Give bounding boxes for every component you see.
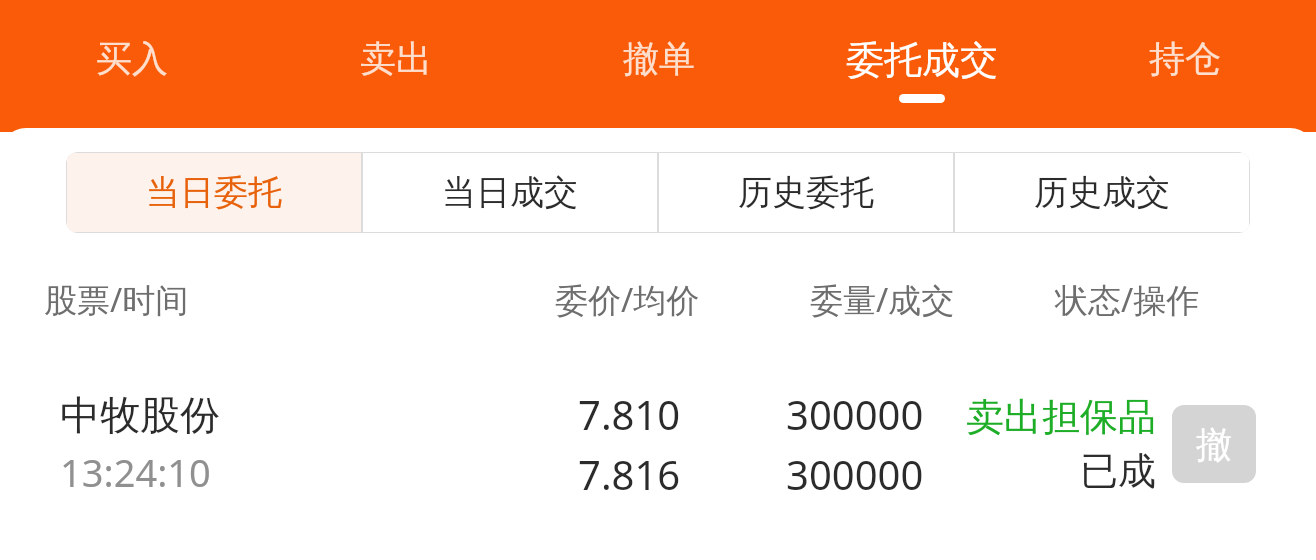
staticText: 委价/均价 [555,277,700,322]
button[interactable]: 买入 [0,0,264,132]
staticText: 已成 [1080,447,1156,495]
staticText: 当日成交 [442,171,578,214]
staticText: 委量/成交 [810,277,955,322]
staticText: 卖出担保品 [966,393,1156,441]
button[interactable]: 卖出 [264,0,527,132]
staticText: 股票/时间 [44,277,189,322]
staticText: 300000 [786,447,924,501]
button[interactable]: 历史委托 [659,153,953,232]
staticText: 7.810 [578,387,681,441]
button[interactable]: 当日成交 [363,153,657,232]
staticText: 7.816 [578,447,681,501]
button[interactable]: 持仓 [1053,0,1316,132]
button[interactable]: 历史成交 [955,153,1249,232]
staticText: 买入 [96,36,168,81]
staticText: 持仓 [1149,36,1221,81]
staticText: 状态/操作 [1055,277,1200,322]
staticText: 卖出 [360,36,432,81]
button[interactable]: 委托成交 [790,0,1053,132]
staticText: 历史委托 [738,171,874,214]
button[interactable]: 中牧股份 [0,387,1316,501]
button[interactable]: 撤单 [1172,405,1256,483]
staticText: 当日委托 [146,171,282,214]
staticText: 300000 [786,387,924,441]
staticText: 撤单 [623,36,695,81]
staticText: 13:24:10 [60,446,211,498]
staticText: 中牧股份 [60,390,220,440]
staticText: 历史成交 [1034,171,1170,214]
button[interactable]: 撤单 [527,0,790,132]
staticText: 委托成交 [846,36,998,84]
button[interactable]: 当日委托 [67,153,361,232]
staticText: 撤 [1196,422,1232,467]
